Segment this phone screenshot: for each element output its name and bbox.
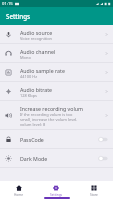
staticText: 44100 Hz: [20, 74, 38, 79]
button[interactable]: PassCode: [0, 130, 113, 149]
staticText: Dark Mode: [20, 155, 97, 162]
staticText: Increase recording volum: [20, 105, 83, 112]
button[interactable]: Audio bitrate: [0, 82, 113, 101]
staticText: Mono: [20, 55, 31, 60]
button[interactable]: Increase recording volum: [0, 101, 113, 130]
staticText: Audio source: [20, 29, 53, 36]
button[interactable]: Audio sample rate: [0, 63, 113, 82]
staticText: Settings: [50, 193, 63, 197]
staticText: Home: [14, 193, 24, 197]
staticText: 128 Kbps: [20, 93, 37, 98]
staticText: Audio sample rate: [20, 67, 65, 74]
staticText: Settings: [6, 12, 31, 20]
button[interactable]: Settings: [37, 181, 75, 200]
staticText: Audio bitrate: [20, 86, 53, 93]
staticText: Audio channel: [20, 48, 56, 55]
staticText: Voice recognition: [20, 36, 52, 41]
button[interactable]: Home: [0, 181, 37, 200]
staticText: If the recording volum is too small, inc…: [20, 112, 78, 127]
button[interactable]: Audio channel: [0, 44, 113, 63]
staticText: 01:15: [2, 1, 13, 7]
button[interactable]: Store: [75, 181, 113, 200]
staticText: PassCode: [20, 136, 97, 143]
staticText: Store: [90, 193, 98, 197]
button[interactable]: Dark Mode: [0, 149, 113, 168]
button[interactable]: Audio source: [0, 25, 113, 44]
